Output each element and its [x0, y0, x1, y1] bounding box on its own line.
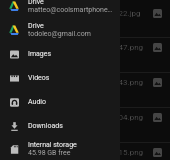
- button[interactable]: 2018-05-07 10.33.47.png: [54, 38, 162, 56]
- button[interactable]: Audio: [0, 91, 120, 113]
- staticText: matteo@coolsmartphone…: [28, 6, 113, 14]
- staticText: Images: [28, 50, 52, 58]
- staticText: Drive: [28, 0, 44, 6]
- staticText: 45.98 GB free: [28, 149, 71, 157]
- staticText: Internal storage: [28, 141, 77, 149]
- staticText: Drive: [28, 22, 44, 30]
- staticText: 2018-05-07 10.33.47.png: [54, 43, 144, 52]
- staticText: 2018-05-07 10.34.15.png: [54, 148, 144, 157]
- staticText: 2018-05-07 10.34.04.png: [54, 113, 144, 122]
- staticText: Audio: [28, 98, 47, 106]
- button[interactable]: Drive: [0, 19, 120, 41]
- button[interactable]: 2018-05-07 10.33.22.jpg: [54, 4, 162, 22]
- staticText: 2018-05-07 10.33.22.jpg: [54, 9, 141, 18]
- staticText: 2018-05-07 10.33.43.png: [54, 78, 144, 87]
- staticText: todoleo@gmail.com: [28, 30, 91, 38]
- button[interactable]: Drive: [0, 0, 120, 17]
- button[interactable]: Videos: [0, 67, 120, 89]
- staticText: Videos: [28, 74, 50, 82]
- button[interactable]: 2018-05-07 10.33.43.png: [54, 73, 162, 91]
- staticText: Downloads: [28, 122, 63, 130]
- button[interactable]: 2018-05-07 10.34.15.png: [54, 143, 162, 160]
- button[interactable]: Images: [0, 43, 120, 65]
- button[interactable]: Internal storage: [0, 138, 120, 160]
- button[interactable]: 2018-05-07 10.34.04.png: [54, 108, 162, 126]
- button[interactable]: Downloads: [0, 115, 120, 137]
